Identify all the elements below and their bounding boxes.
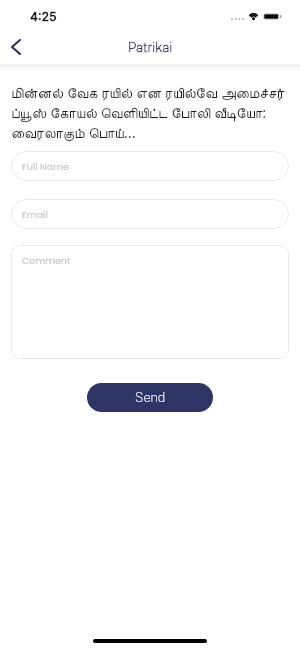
staticText: Send — [135, 390, 166, 405]
staticText: Patrikai — [128, 40, 173, 55]
button[interactable]: Full Name — [11, 151, 289, 181]
button[interactable]: Send — [87, 383, 213, 412]
staticText: Comment — [22, 254, 71, 267]
staticText: Email — [22, 208, 48, 221]
staticText: Full Name — [22, 160, 69, 173]
staticText: மின்னல் வேக ரயில் என ரயில்வே அமைச்சர் ப்… — [11, 82, 292, 142]
button[interactable]: Comment — [11, 245, 289, 359]
button[interactable]: Email — [11, 199, 289, 229]
staticText: 4:25 — [30, 9, 57, 24]
button[interactable]: Back — [0, 31, 32, 63]
